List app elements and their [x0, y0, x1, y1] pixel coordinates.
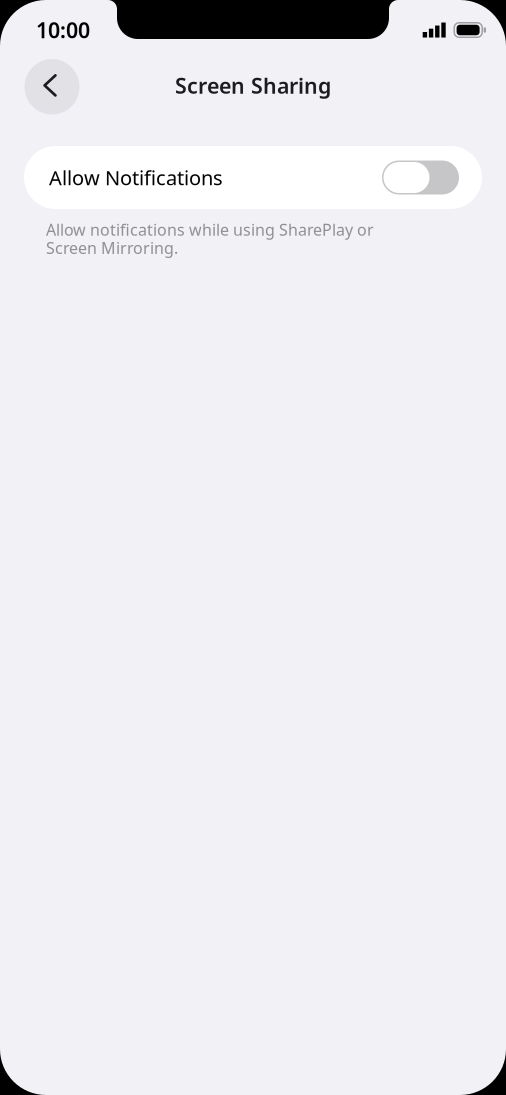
staticText: Screen Mirroring. — [46, 237, 178, 258]
button[interactable]: Off — [24, 146, 482, 209]
staticText: Allow notifications while using SharePla… — [46, 219, 374, 240]
staticText: Allow Notifications — [49, 164, 223, 191]
button[interactable]: Back — [24, 56, 80, 114]
staticText: Screen Sharing — [175, 71, 331, 100]
staticText: 10:00 — [36, 16, 90, 44]
